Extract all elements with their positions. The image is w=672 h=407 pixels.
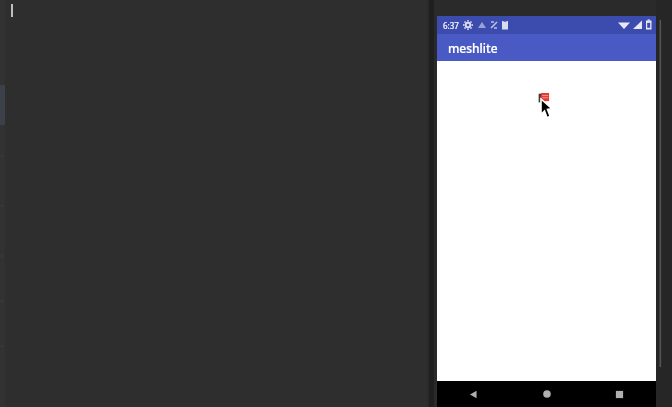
button[interactable]: meshlite <box>437 34 656 61</box>
button[interactable]: Marker <box>538 93 551 107</box>
button[interactable]: Back <box>437 381 510 407</box>
staticText: 6:37 <box>443 20 459 31</box>
button[interactable]: Home <box>510 381 583 407</box>
staticText: meshlite <box>448 40 498 56</box>
button[interactable]: Recent apps <box>583 381 656 407</box>
